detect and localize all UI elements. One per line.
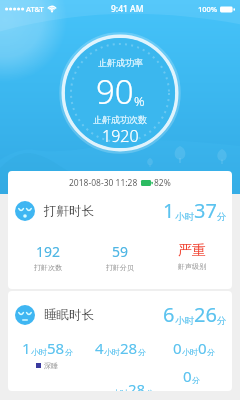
- staticText: 4: [95, 338, 104, 358]
- staticText: %: [134, 92, 145, 110]
- staticText: 小时: [175, 211, 194, 223]
- staticText: 59: [112, 242, 129, 261]
- staticText: 28: [120, 338, 138, 358]
- staticText: 0: [173, 338, 182, 358]
- staticText: 26: [194, 301, 217, 328]
- staticText: 小时: [112, 388, 128, 391]
- staticText: 鼾声级别: [178, 262, 206, 271]
- staticText: 深睡: [44, 361, 58, 370]
- staticText: 打鼾次数: [34, 263, 62, 272]
- staticText: 0: [198, 338, 207, 358]
- staticText: 打鼾分贝: [106, 263, 134, 272]
- staticText: 分: [192, 375, 200, 385]
- staticText: AT&T: [26, 4, 44, 14]
- staticText: 止鼾成功次数: [93, 114, 147, 125]
- staticText: 小时: [31, 347, 47, 357]
- staticText: 9:41 AM: [111, 3, 144, 15]
- staticText: 192: [36, 242, 61, 261]
- staticText: 1: [163, 197, 175, 224]
- staticText: 37: [194, 197, 217, 224]
- staticText: 小时: [175, 315, 194, 327]
- staticText: 0: [183, 366, 192, 386]
- staticText: 分: [217, 315, 227, 327]
- staticText: 90: [96, 69, 134, 114]
- staticText: 止鼾成功率: [98, 57, 143, 68]
- staticText: 小时: [182, 347, 198, 357]
- button[interactable]: 2018-08-30 11:28: [8, 171, 232, 289]
- other: Wi-Fi: [47, 5, 57, 13]
- staticText: 严重: [178, 242, 206, 260]
- staticText: 2018-08-30 11:28: [69, 177, 138, 189]
- staticText: 小时: [104, 347, 120, 357]
- staticText: 100%: [198, 4, 218, 14]
- staticText: 82%: [154, 177, 171, 189]
- staticText: 28: [128, 379, 146, 391]
- staticText: 分: [207, 347, 215, 357]
- staticText: 分: [146, 388, 154, 391]
- staticText: 1920: [102, 125, 139, 147]
- staticText: 分: [217, 211, 227, 223]
- staticText: 打鼾时长: [44, 203, 94, 219]
- staticText: 58: [47, 338, 65, 358]
- staticText: 6: [163, 301, 175, 328]
- staticText: 分: [65, 347, 73, 357]
- staticText: 睡眠时长: [44, 307, 94, 323]
- button[interactable]: 睡眠时长: [8, 291, 232, 391]
- staticText: 分: [138, 347, 146, 357]
- staticText: 1: [22, 338, 31, 358]
